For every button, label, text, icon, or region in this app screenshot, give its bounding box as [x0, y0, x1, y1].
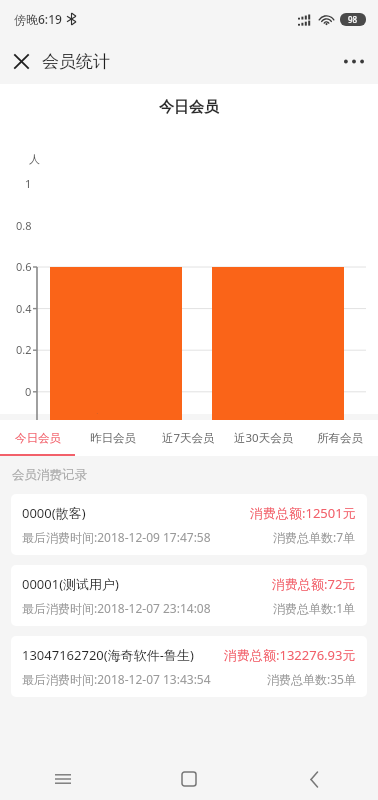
staticText: 近7天会员: [162, 430, 215, 446]
button[interactable]: 今日会员: [0, 420, 75, 456]
staticText: 0.2: [16, 342, 32, 357]
staticText: 会员消费记录: [12, 467, 87, 483]
staticText: 1: [25, 176, 32, 191]
staticText: 人: [29, 152, 40, 166]
staticText: 今日会员: [159, 98, 219, 117]
staticText: 消费总额:12501元: [250, 504, 356, 522]
button[interactable]: Close: [0, 45, 118, 78]
staticText: 00001(测试用户): [22, 575, 119, 593]
button[interactable]: Home: [126, 758, 252, 800]
staticText: 消费总单数:35单: [267, 671, 356, 687]
staticText: 今日会员: [15, 431, 61, 445]
staticText: 0: [25, 384, 32, 399]
staticText: 会员统计: [42, 51, 110, 72]
staticText: 0.8: [16, 218, 32, 233]
staticText: 消费总额:132276.93元: [224, 646, 356, 664]
staticText: 0.4: [16, 301, 32, 316]
staticText: 消费总额:72元: [272, 575, 356, 593]
staticText: 最后消费时间:2018-12-07 23:14:08: [22, 600, 211, 616]
staticText: 消费总单数:7单: [273, 529, 356, 545]
staticText: 昨日会员: [90, 431, 136, 445]
button[interactable]: Back: [252, 758, 378, 800]
staticText: 98: [348, 14, 358, 25]
staticText: 13047162720(海奇软件-鲁生): [22, 646, 194, 664]
button[interactable]: 13047162720(海奇软件-鲁生): [11, 636, 367, 697]
staticText: 傍晚6:19: [14, 11, 62, 27]
button[interactable]: Recent apps: [0, 758, 126, 800]
button[interactable]: 近30天会员: [226, 420, 302, 456]
button[interactable]: 所有会员: [302, 420, 378, 456]
staticText: 最后消费时间:2018-12-09 17:47:58: [22, 529, 211, 545]
staticText: 0000(散客): [22, 504, 86, 522]
button[interactable]: 00001(测试用户): [11, 565, 367, 626]
staticText: 最后消费时间:2018-12-07 13:43:54: [22, 671, 211, 687]
staticText: 0.6: [16, 259, 32, 274]
staticText: 近30天会员: [234, 430, 294, 446]
button[interactable]: 近7天会员: [150, 420, 226, 456]
staticText: 所有会员: [317, 431, 363, 445]
button[interactable]: 昨日会员: [75, 420, 150, 456]
staticText: 消费总单数:1单: [273, 600, 356, 616]
button[interactable]: 0000(散客): [11, 494, 367, 555]
button[interactable]: More options: [330, 49, 378, 74]
